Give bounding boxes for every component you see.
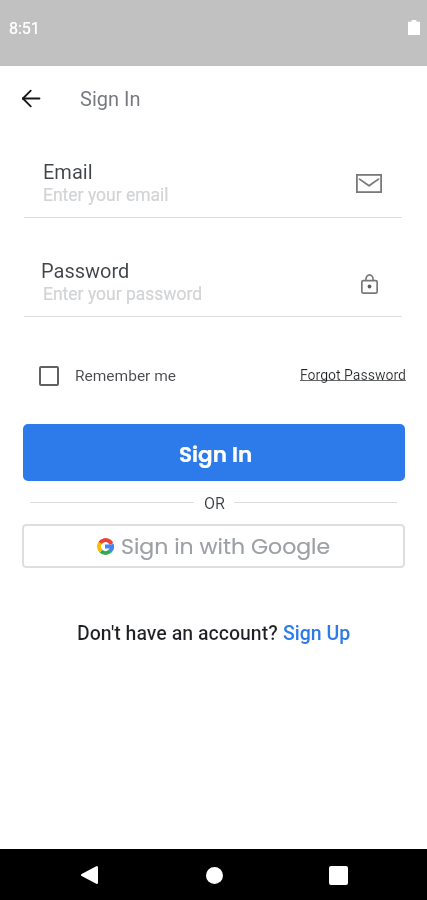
staticText: OR <box>204 494 225 513</box>
button[interactable]: Home <box>191 852 237 898</box>
button[interactable]: Back <box>7 74 55 122</box>
button[interactable]: Sign Up <box>283 622 351 645</box>
staticText: Enter your password <box>43 284 203 305</box>
staticText: 8:51 <box>9 19 40 38</box>
staticText: Sign In <box>80 87 141 110</box>
staticText: Password <box>41 259 130 282</box>
staticText: Remember me <box>75 367 177 385</box>
staticText: Sign in with Google <box>121 531 331 562</box>
staticText: Email <box>43 160 93 183</box>
staticText: Sign In <box>179 439 253 469</box>
button[interactable]: Recent apps <box>315 852 361 898</box>
staticText: Enter your email <box>43 185 169 206</box>
button[interactable]: Sign in with Google <box>22 524 405 568</box>
button[interactable]: Sign In <box>23 424 405 481</box>
button[interactable]: Remember me <box>39 366 177 386</box>
button[interactable]: Back <box>66 852 112 898</box>
button[interactable]: Forgot Password <box>300 367 406 383</box>
staticText: Don't have an account? <box>77 622 283 645</box>
